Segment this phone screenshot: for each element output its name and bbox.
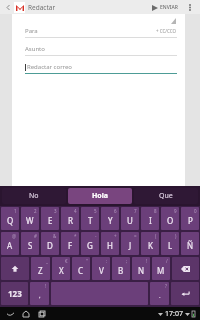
staticText: / — [166, 258, 168, 264]
button[interactable]: 2 — [21, 207, 39, 230]
staticText: Asunto — [25, 45, 45, 53]
button[interactable]: Home — [20, 308, 32, 320]
staticText: . — [159, 292, 161, 300]
button[interactable]: ENVIAR — [150, 4, 180, 11]
button[interactable]: 9 — [161, 207, 179, 230]
staticText: Ñ — [187, 240, 194, 251]
staticText: C — [78, 265, 84, 276]
button[interactable]: 4 — [61, 207, 79, 230]
staticText: 6 — [114, 208, 117, 214]
button[interactable]: - — [81, 232, 99, 255]
staticText: K — [148, 240, 153, 251]
button[interactable]: € — [52, 257, 70, 280]
button[interactable]: Que — [134, 188, 198, 204]
button[interactable]: ! — [132, 257, 150, 280]
button[interactable]: & — [41, 232, 59, 255]
staticText: X — [59, 265, 64, 276]
staticText: U — [127, 215, 133, 226]
staticText: B — [118, 265, 124, 276]
button[interactable]: Numbers — [1, 282, 28, 305]
staticText: ) — [175, 233, 177, 239]
button[interactable]: Backspace — [172, 257, 199, 280]
button[interactable]: + — [101, 232, 119, 255]
button[interactable]: More options — [185, 2, 195, 12]
staticText: F — [68, 240, 73, 251]
button[interactable]: = — [121, 232, 139, 255]
button[interactable]: Redactar correo — [25, 63, 177, 74]
staticText: + CC/CCO — [156, 28, 177, 34]
button[interactable]: Back — [3, 2, 14, 13]
staticText: Para — [25, 27, 38, 35]
staticText: " — [86, 258, 88, 264]
button[interactable]: ; — [112, 257, 130, 280]
button[interactable]: Para — [25, 27, 177, 38]
staticText: R — [68, 215, 73, 226]
staticText: 123 — [8, 288, 22, 299]
button[interactable]: # — [21, 232, 39, 255]
button[interactable]: Recent apps — [36, 308, 48, 320]
staticText: + — [114, 233, 117, 239]
button[interactable]: : — [92, 257, 110, 280]
staticText: 4 — [74, 208, 77, 214]
button[interactable]: 7 — [121, 207, 139, 230]
staticText: A — [7, 240, 13, 251]
button[interactable]: ? — [150, 282, 169, 305]
staticText: 0 — [194, 208, 197, 214]
staticText: I — [149, 215, 152, 226]
staticText: 8 — [154, 208, 157, 214]
button[interactable]: _ — [31, 257, 50, 280]
staticText: E — [48, 215, 53, 226]
button[interactable]: Ñ — [181, 232, 199, 255]
staticText: ? — [165, 283, 167, 289]
button[interactable]: 8 — [141, 207, 159, 230]
staticText: Que — [159, 191, 173, 201]
staticText: ( — [155, 233, 157, 239]
staticText: ! — [146, 258, 148, 264]
button[interactable]: 3 — [41, 207, 59, 230]
button[interactable]: 6 — [101, 207, 119, 230]
button[interactable]: / — [152, 257, 170, 280]
button[interactable]: No — [2, 188, 66, 204]
staticText: W — [26, 215, 34, 226]
button[interactable]: @ — [1, 232, 19, 255]
staticText: M — [157, 265, 165, 276]
staticText: 7 — [134, 208, 137, 214]
button[interactable]: Enter — [171, 282, 199, 305]
button[interactable]: ) — [161, 232, 179, 255]
staticText: # — [34, 233, 37, 239]
button[interactable]: ( — [141, 232, 159, 255]
staticText: : — [106, 258, 108, 264]
button[interactable]: * — [61, 232, 79, 255]
staticText: 9 — [174, 208, 177, 214]
staticText: J — [129, 240, 132, 251]
staticText: O — [167, 215, 174, 226]
button[interactable]: Back — [4, 308, 16, 320]
button[interactable]: Asunto — [25, 45, 177, 56]
button[interactable]: 5 — [81, 207, 99, 230]
staticText: = — [134, 233, 137, 239]
staticText: ENVIAR — [160, 4, 178, 11]
staticText: € — [65, 258, 68, 264]
button[interactable]: 1 — [1, 207, 19, 230]
staticText: P — [188, 215, 193, 226]
staticText: * — [74, 233, 77, 239]
button[interactable]: ! — [30, 282, 49, 305]
staticText: Hola — [92, 191, 109, 201]
button[interactable]: " — [72, 257, 90, 280]
staticText: Redactar correo — [27, 63, 72, 71]
staticText: _ — [46, 258, 48, 264]
staticText: 2 — [34, 208, 37, 214]
button[interactable]: 0 — [181, 207, 199, 230]
staticText: T — [88, 215, 93, 226]
staticText: & — [53, 233, 57, 239]
staticText: V — [99, 265, 104, 276]
staticText: Y — [108, 215, 113, 226]
button[interactable]: Hola — [68, 188, 132, 204]
staticText: - — [95, 233, 97, 239]
staticText: G — [87, 240, 93, 251]
staticText: Q — [7, 215, 14, 226]
button[interactable]: Shift — [1, 257, 29, 280]
staticText: 3 — [54, 208, 57, 214]
staticText: 1 — [14, 208, 17, 214]
